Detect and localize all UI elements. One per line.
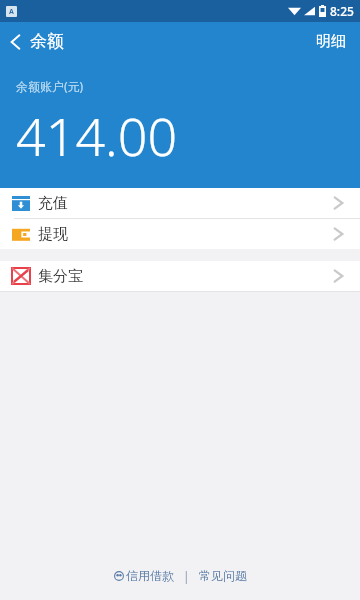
staticText: 常见问题 — [199, 568, 247, 583]
button[interactable]: 充值 — [0, 188, 360, 218]
staticText: | — [183, 568, 190, 584]
staticText: 集分宝 — [38, 267, 83, 286]
staticText: 8:25 — [330, 3, 354, 19]
button[interactable]: Back — [0, 25, 74, 58]
staticText: 明细 — [316, 32, 346, 51]
staticText: 余额 — [30, 31, 64, 52]
button[interactable]: 集分宝 — [0, 261, 360, 291]
staticText: A — [9, 7, 14, 17]
button[interactable]: 提现 — [0, 219, 360, 249]
other: Back — [10, 33, 21, 51]
button[interactable]: 常见问题 — [195, 564, 251, 587]
staticText: 414.00 — [16, 100, 178, 171]
staticText: 余额账户(元) — [16, 78, 84, 94]
button[interactable]: 信用借款 — [110, 564, 178, 587]
staticText: 充值 — [38, 194, 68, 213]
staticText: 提现 — [38, 225, 68, 244]
button[interactable]: 明细 — [302, 24, 360, 59]
staticText: 信用借款 — [126, 568, 174, 583]
